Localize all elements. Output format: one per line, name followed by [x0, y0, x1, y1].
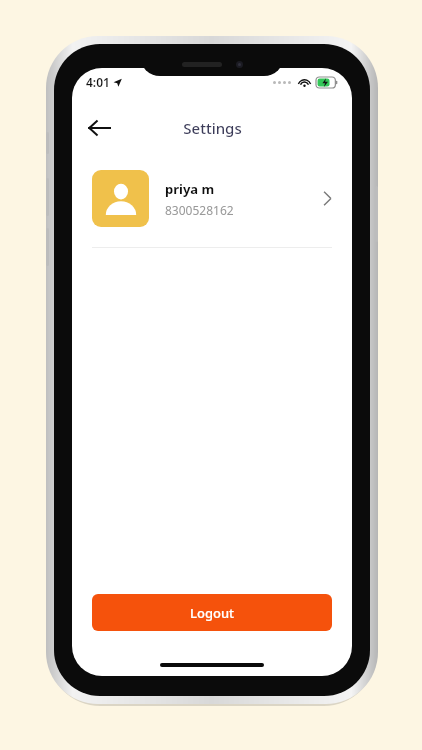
button[interactable]: Logout [92, 594, 332, 631]
staticText: Logout [190, 604, 235, 622]
staticText: Settings [183, 118, 242, 138]
staticText: priya m [165, 180, 215, 198]
button[interactable]: priya m [72, 164, 352, 233]
staticText: 4:01 [86, 74, 110, 90]
button[interactable]: Back [78, 107, 120, 149]
staticText: 8300528162 [165, 202, 234, 218]
